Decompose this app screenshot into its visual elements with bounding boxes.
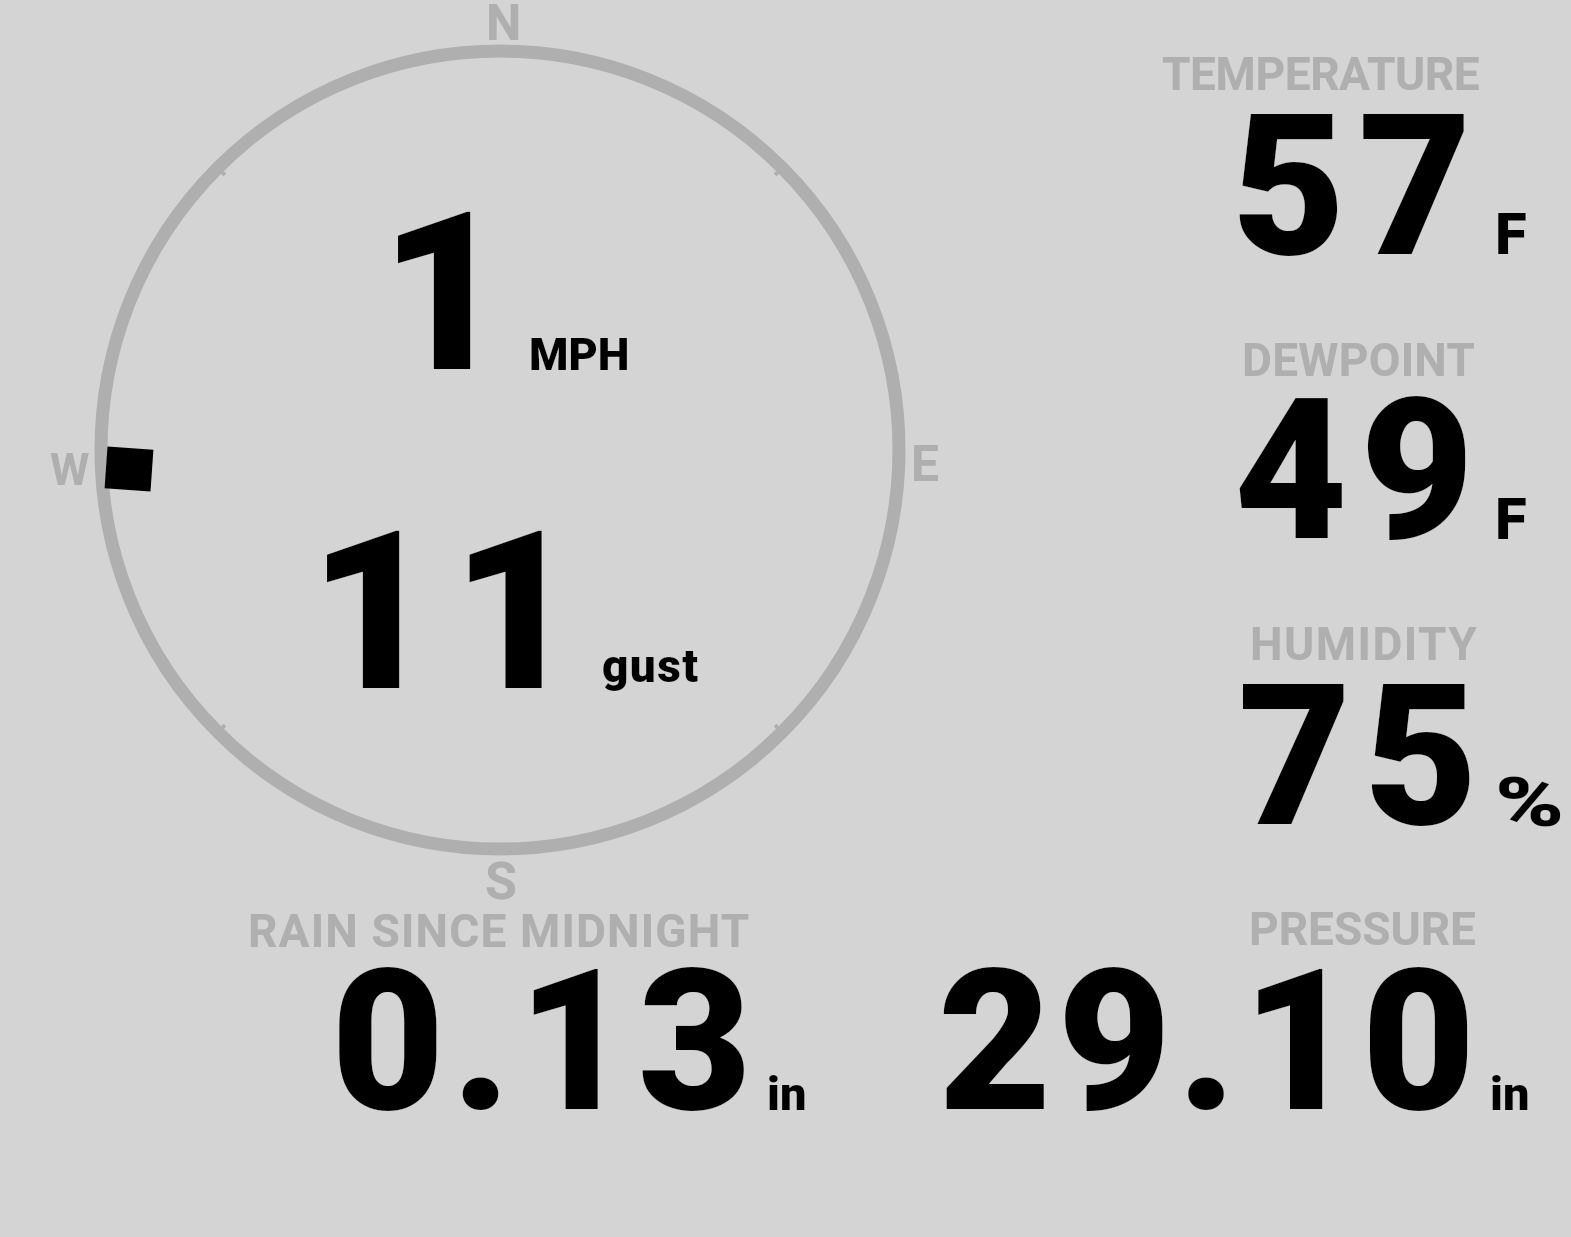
staticText: RAIN SINCE MIDNIGHT — [248, 904, 751, 958]
staticText: 11 — [309, 483, 594, 742]
staticText: gust — [602, 639, 700, 693]
staticText: S — [485, 851, 519, 912]
staticText: N — [486, 0, 523, 53]
staticText: 0.13 — [331, 927, 759, 1157]
button[interactable]: Humidity 75 percent — [1140, 610, 1571, 840]
staticText: HUMIDITY — [1250, 617, 1479, 671]
staticText: F — [1495, 200, 1527, 268]
staticText: in — [767, 1066, 807, 1121]
staticText: E — [911, 435, 941, 494]
staticText: 57 — [1232, 72, 1485, 302]
staticText: PRESSURE — [1249, 902, 1476, 956]
button[interactable]: Temperature 57 degrees Fahrenheit — [1140, 40, 1571, 270]
staticText: 49 — [1234, 356, 1487, 586]
staticText: DEWPOINT — [1242, 333, 1476, 387]
staticText: 75 — [1238, 642, 1491, 872]
staticText: in — [1490, 1066, 1530, 1121]
button[interactable]: Dew point 49 degrees Fahrenheit — [1140, 325, 1571, 555]
other: Wind direction west — [105, 446, 153, 491]
staticText: F — [1495, 485, 1527, 553]
button[interactable]: Pressure 29.10 inches of mercury — [910, 895, 1550, 1125]
staticText: 1 — [380, 164, 515, 423]
staticText: TEMPERATURE — [1162, 47, 1480, 101]
staticText: MPH — [529, 328, 630, 381]
staticText: W — [50, 443, 91, 496]
button[interactable]: Rain since midnight 0.13 inches — [230, 895, 840, 1125]
staticText: % — [1495, 763, 1565, 843]
button[interactable]: Wind 1 miles per hour, gusting 11 — [100, 150, 900, 750]
staticText: 29.10 — [938, 927, 1482, 1157]
